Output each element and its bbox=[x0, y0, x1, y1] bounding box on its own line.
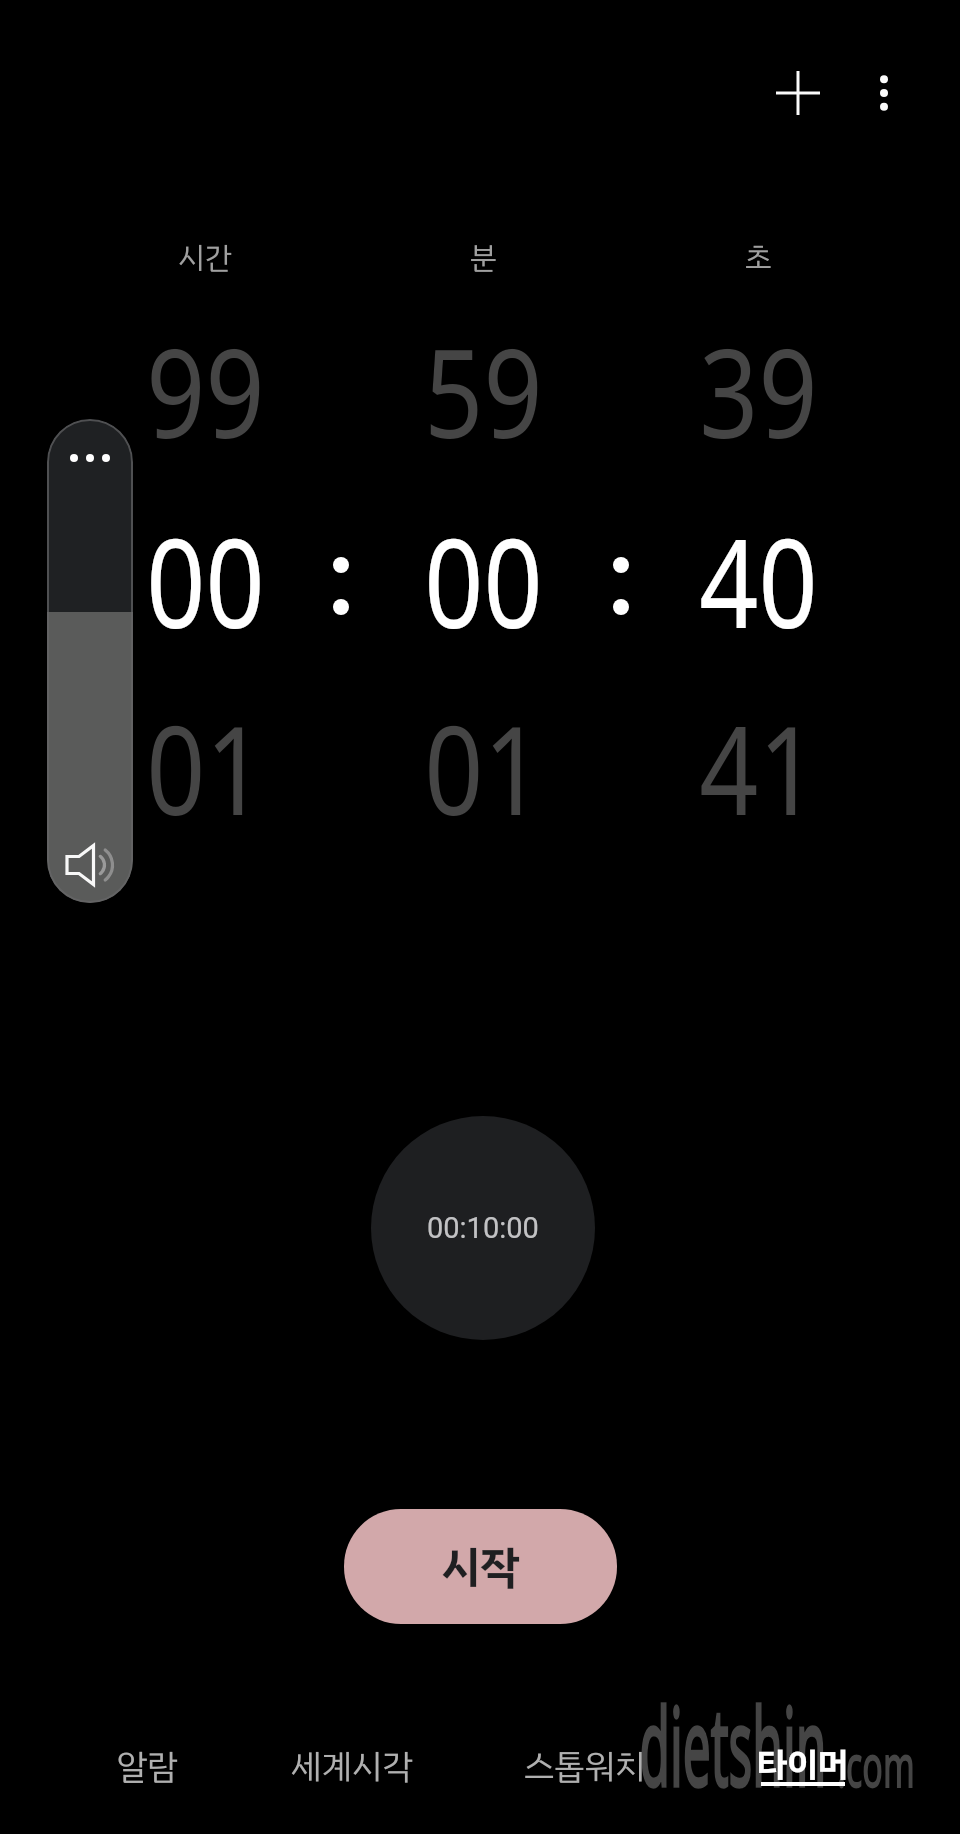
staticText: 59 bbox=[424, 307, 543, 475]
staticText: .com bbox=[837, 1725, 915, 1803]
staticText: dietshin bbox=[639, 1670, 827, 1817]
staticText: 40 bbox=[699, 497, 818, 665]
staticText: 초 bbox=[745, 235, 772, 280]
button[interactable]: 알람 bbox=[57, 1731, 237, 1801]
staticText: 시간 bbox=[178, 235, 232, 280]
button[interactable]: 스톱워치 bbox=[475, 1731, 695, 1801]
staticText: 타이머 bbox=[757, 1739, 848, 1790]
staticText: 01 bbox=[424, 684, 543, 852]
staticText: 00:10:00 bbox=[427, 1211, 539, 1245]
button[interactable]: 타이머 bbox=[712, 1729, 892, 1799]
staticText: 41 bbox=[699, 684, 818, 852]
button[interactable] bbox=[770, 65, 826, 121]
button[interactable]: 시작 bbox=[344, 1509, 617, 1624]
staticText: 00 bbox=[146, 497, 265, 665]
staticText: 시작 bbox=[441, 1534, 520, 1600]
button[interactable]: 00:10:00 bbox=[371, 1116, 595, 1340]
staticText: 39 bbox=[699, 307, 818, 475]
staticText: 01 bbox=[146, 684, 265, 852]
button[interactable] bbox=[856, 65, 912, 121]
staticText: 분 bbox=[470, 235, 497, 280]
staticText: 99 bbox=[146, 307, 265, 475]
button[interactable]: 세계시각 bbox=[242, 1731, 462, 1801]
button[interactable] bbox=[47, 419, 133, 903]
staticText: 알람 bbox=[117, 1741, 178, 1792]
staticText: 00 bbox=[424, 497, 543, 665]
staticText: 스톱워치 bbox=[524, 1741, 646, 1792]
staticText: 세계시각 bbox=[291, 1741, 413, 1792]
